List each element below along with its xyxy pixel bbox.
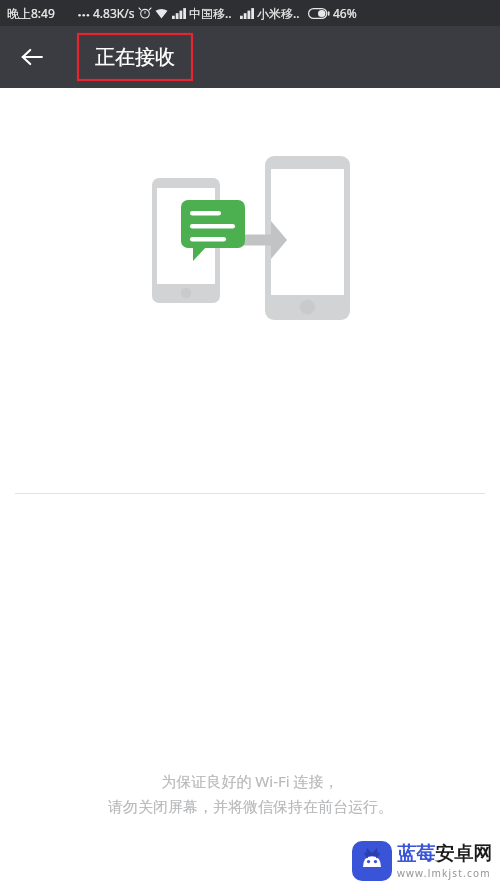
- staticText: 正在接收: [95, 45, 175, 70]
- staticText: 4.83K/s: [93, 5, 135, 21]
- staticText: 为保证良好的 Wi-Fi 连接，: [161, 771, 339, 791]
- staticText: 中国移..: [189, 5, 232, 21]
- staticText: 请勿关闭屏幕，并将微信保持在前台运行。: [108, 798, 393, 817]
- staticText: www.lmkjst.com: [397, 866, 491, 880]
- staticText: 晚上8:49: [7, 5, 55, 21]
- button[interactable]: Back: [8, 33, 56, 81]
- staticText: 蓝莓: [397, 842, 435, 866]
- staticText: 安卓网: [435, 842, 492, 866]
- staticText: 小米移..: [257, 5, 300, 21]
- staticText: 46%: [333, 5, 357, 21]
